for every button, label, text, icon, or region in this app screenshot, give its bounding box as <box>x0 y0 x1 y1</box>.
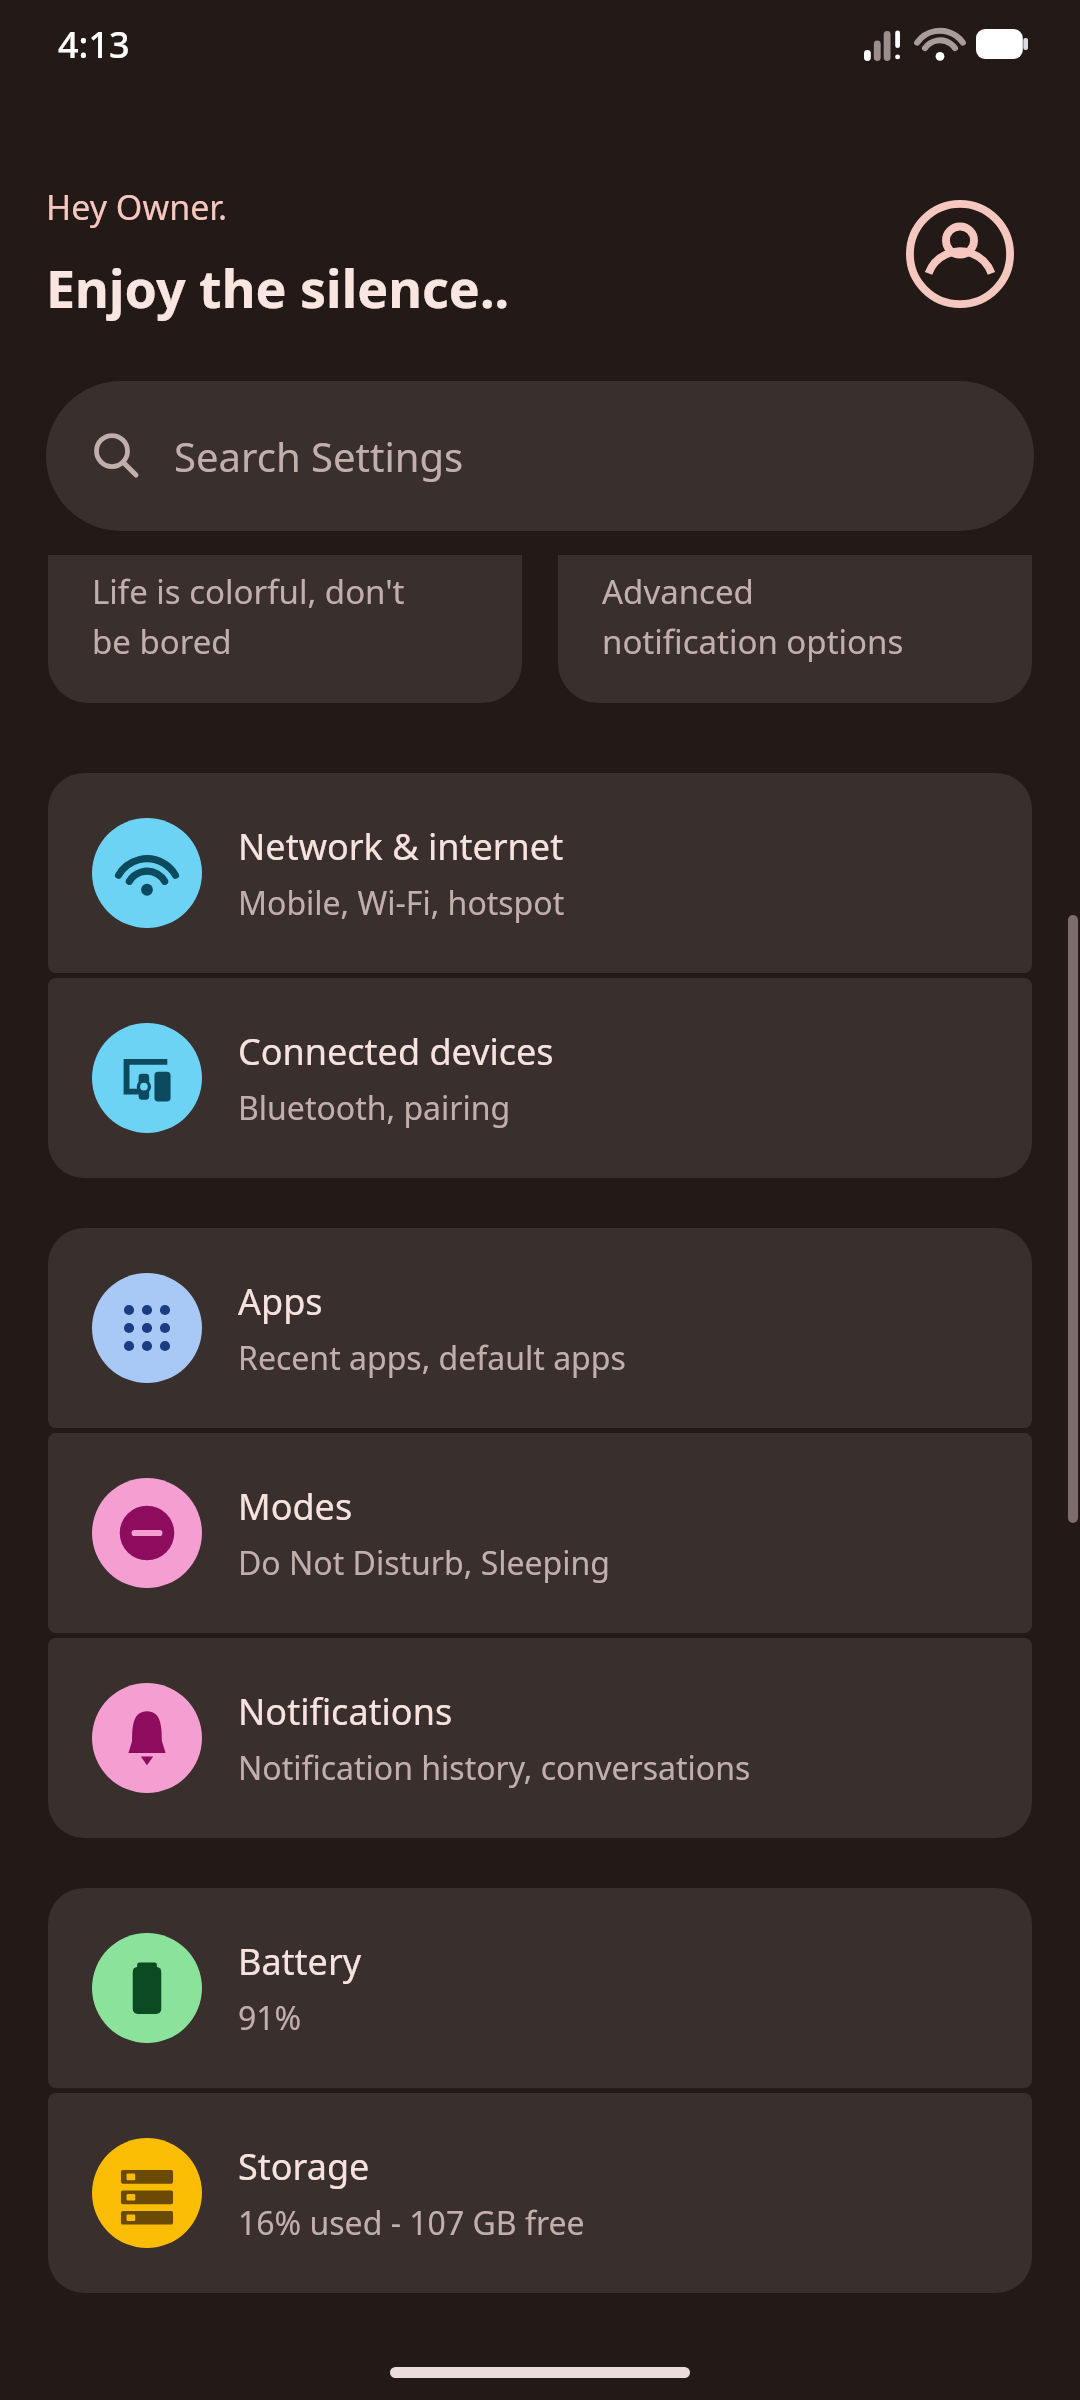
staticText: 91% <box>238 1996 302 2040</box>
staticText: Network & internet <box>238 822 564 871</box>
staticText: Bluetooth, pairing <box>238 1086 511 1130</box>
button[interactable]: Storage <box>48 2093 1032 2293</box>
staticText: Mobile, Wi-Fi, hotspot <box>238 881 565 925</box>
staticText: Notification history, conversations <box>238 1746 751 1790</box>
button[interactable]: Notifications <box>48 1638 1032 1838</box>
staticText: 4:13 <box>58 20 130 69</box>
staticText: Enjoy the silence.. <box>46 252 510 323</box>
button[interactable]: Apps <box>48 1228 1032 1428</box>
button[interactable]: Network & internet <box>48 773 1032 973</box>
button[interactable]: Life is colorful, don't be bored <box>48 555 522 703</box>
button[interactable]: Account <box>898 192 1022 316</box>
button[interactable]: Connected devices <box>48 978 1032 1178</box>
button[interactable]: Advanced notification options <box>558 555 1032 703</box>
button[interactable]: Battery <box>48 1888 1032 2088</box>
staticText: Storage <box>238 2142 370 2191</box>
staticText: Recent apps, default apps <box>238 1336 626 1380</box>
staticText: Notifications <box>238 1687 453 1736</box>
staticText: Life is colorful, don't be bored <box>92 569 405 664</box>
staticText: 16% used - 107 GB free <box>238 2201 585 2245</box>
staticText: Search Settings <box>174 429 464 483</box>
staticText: Apps <box>238 1277 323 1326</box>
staticText: Do Not Disturb, Sleeping <box>238 1541 610 1585</box>
staticText: Battery <box>238 1937 362 1986</box>
staticText: Modes <box>238 1482 353 1531</box>
staticText: Advanced notification options <box>602 569 904 664</box>
button[interactable]: Modes <box>48 1433 1032 1633</box>
staticText: Hey Owner. <box>46 184 228 230</box>
button[interactable]: Search Settings <box>46 381 1034 531</box>
staticText: Connected devices <box>238 1027 554 1076</box>
